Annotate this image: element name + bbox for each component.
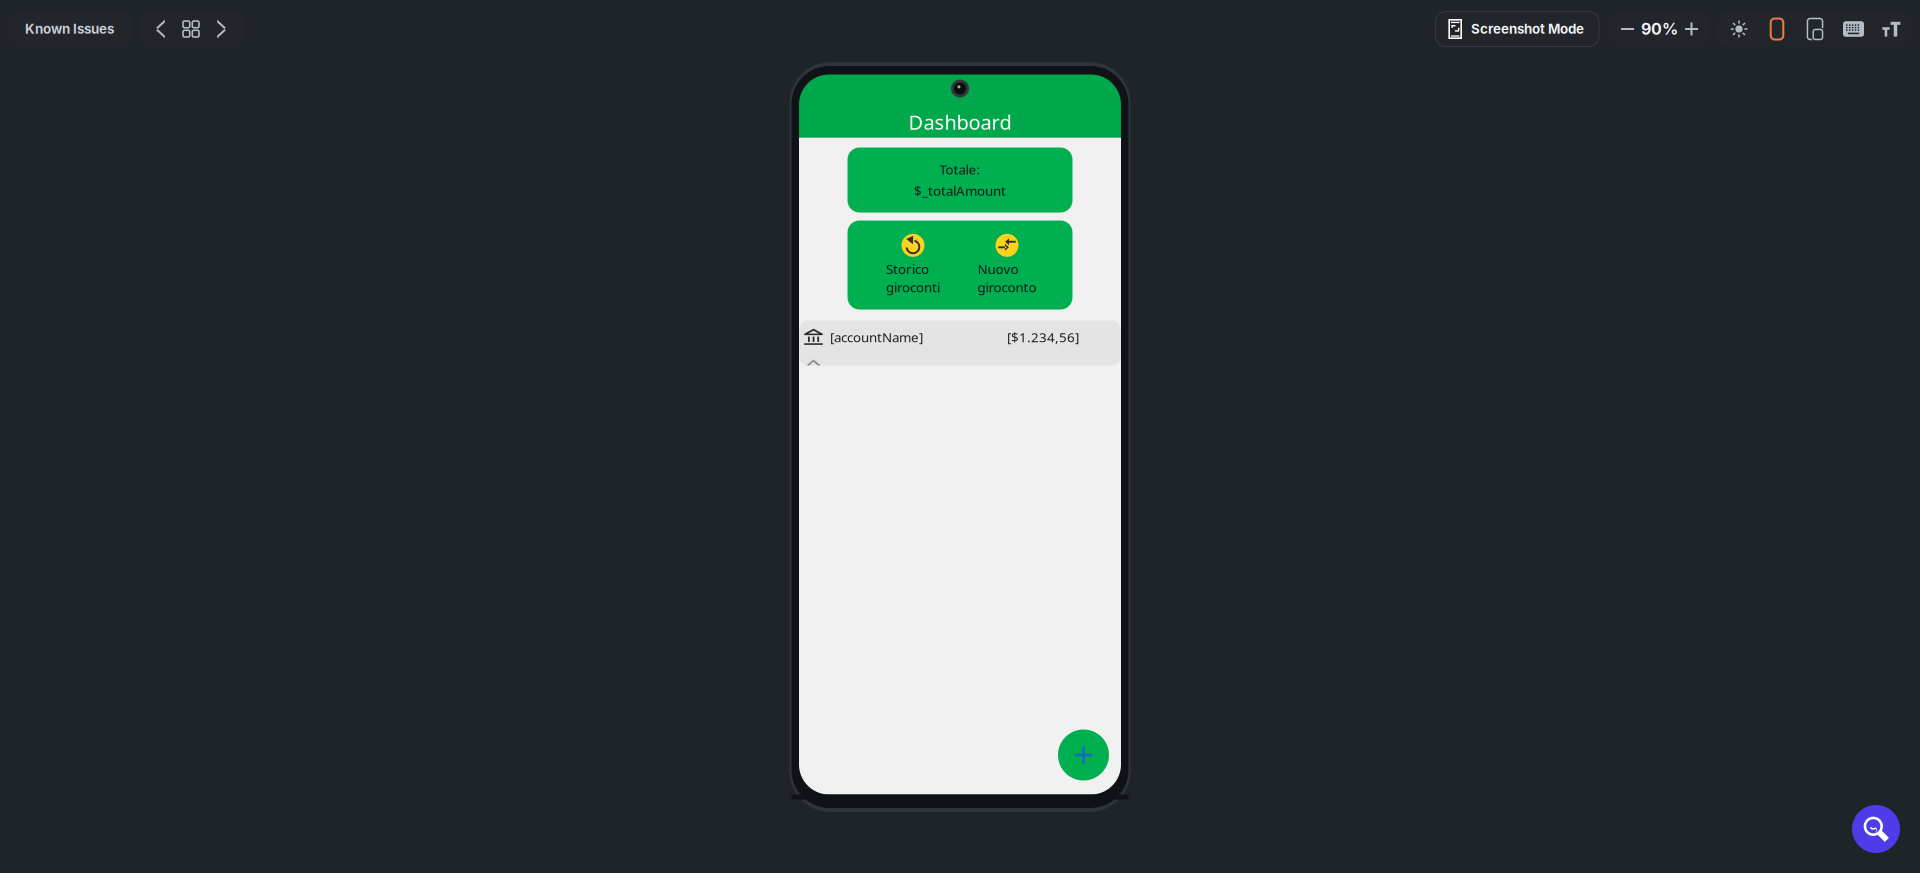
staticText: [$1.234,56] (1007, 328, 1079, 346)
button[interactable]: Totale: (847, 147, 1072, 212)
button[interactable]: Previous (139, 11, 179, 47)
button[interactable]: Split view (1796, 11, 1834, 46)
button[interactable]: Keyboard (1834, 11, 1873, 46)
staticText: Totale: (939, 160, 980, 178)
staticText: Dashboard (908, 108, 1011, 135)
button[interactable]: Appearance (1718, 11, 1758, 46)
button[interactable]: Text size (1873, 11, 1912, 46)
button[interactable]: Zoom out (1609, 11, 1641, 46)
staticText: [accountName] (830, 328, 923, 346)
staticText: Known Issues (25, 21, 114, 37)
button[interactable]: Search (1852, 805, 1900, 853)
staticText: $_totalAmount (914, 181, 1006, 200)
button[interactable]: Nuovo giroconto (960, 220, 1054, 309)
staticText: Nuovo giroconto (977, 260, 1036, 296)
staticText: Storico giroconti (886, 260, 940, 296)
button[interactable]: Device (1758, 11, 1796, 46)
button[interactable]: All screens (179, 11, 203, 47)
button[interactable]: Zoom in (1678, 11, 1710, 46)
button[interactable]: Next (203, 11, 243, 47)
staticText: 90% (1641, 19, 1678, 39)
button[interactable]: Known Issues (9, 11, 130, 47)
staticText: Screenshot Mode (1471, 21, 1584, 37)
button[interactable]: Add (1058, 729, 1109, 780)
button[interactable]: Storico giroconti (866, 220, 960, 309)
button[interactable]: Screenshot Mode (1435, 11, 1599, 46)
